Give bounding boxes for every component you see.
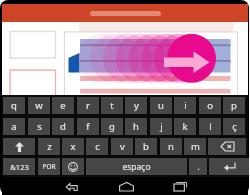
staticText: z	[47, 140, 52, 153]
button[interactable]: x	[62, 138, 84, 155]
staticText: espaço	[122, 161, 151, 173]
button[interactable]: POR	[38, 158, 60, 175]
button[interactable]: b	[135, 138, 157, 155]
button[interactable]: r	[77, 97, 99, 114]
button[interactable]: .	[189, 158, 207, 175]
button[interactable]: p	[223, 97, 245, 114]
button[interactable]: &123	[3, 158, 35, 175]
button[interactable]: i	[174, 97, 196, 114]
staticText: x	[70, 140, 76, 153]
button[interactable]: k	[174, 118, 196, 135]
staticText: .	[197, 160, 200, 173]
button[interactable]: e	[52, 97, 74, 114]
button[interactable]: f	[77, 118, 99, 135]
staticText: m	[191, 140, 200, 153]
staticText: &123	[10, 162, 29, 172]
staticText: p	[231, 99, 237, 112]
staticText: a	[11, 120, 17, 133]
button[interactable]: v	[111, 138, 133, 155]
button[interactable]: d	[52, 118, 74, 135]
button[interactable]: Back	[61, 178, 83, 194]
button[interactable]: s	[28, 118, 50, 135]
button[interactable]: espaço	[86, 158, 187, 175]
staticText: h	[133, 120, 139, 133]
button[interactable]: Home	[115, 178, 137, 194]
staticText: t	[110, 99, 114, 112]
button[interactable]: h	[125, 118, 147, 135]
staticText: y	[134, 99, 139, 112]
button[interactable]: o	[199, 97, 221, 114]
button[interactable]	[209, 158, 249, 175]
staticText: c	[95, 140, 100, 153]
staticText: g	[109, 120, 115, 133]
button[interactable]: a	[3, 118, 25, 135]
button[interactable]: j	[150, 118, 172, 135]
staticText: ç	[232, 120, 237, 133]
button[interactable]: q	[3, 97, 25, 114]
button[interactable]	[2, 4, 248, 22]
button[interactable]: n	[160, 138, 182, 155]
staticText: f	[86, 120, 90, 133]
button[interactable]: u	[150, 97, 172, 114]
staticText: e	[60, 99, 66, 112]
staticText: l	[209, 120, 212, 133]
button[interactable]: w	[28, 97, 50, 114]
button[interactable]	[3, 138, 35, 155]
staticText: k	[182, 120, 188, 133]
staticText: d	[60, 120, 66, 133]
button[interactable]: m	[184, 138, 206, 155]
button[interactable]: l	[199, 118, 221, 135]
button[interactable]	[62, 158, 84, 175]
staticText: v	[120, 140, 125, 153]
button[interactable]: c	[86, 138, 108, 155]
button[interactable]: z	[38, 138, 60, 155]
staticText: u	[158, 99, 164, 112]
button[interactable]: g	[101, 118, 123, 135]
staticText: n	[168, 140, 174, 153]
staticText: o	[207, 99, 213, 112]
button[interactable]: Recents	[169, 178, 191, 194]
button[interactable]	[208, 138, 246, 155]
staticText: s	[37, 120, 42, 133]
staticText: POR	[42, 162, 56, 171]
button[interactable]: y	[125, 97, 147, 114]
button[interactable]: t	[101, 97, 123, 114]
staticText: q	[11, 99, 17, 112]
button[interactable]: ç	[223, 118, 245, 135]
staticText: j	[160, 120, 163, 133]
staticText: b	[143, 140, 149, 153]
staticText: w	[35, 99, 43, 112]
staticText: i	[184, 99, 187, 112]
staticText: r	[86, 99, 90, 112]
